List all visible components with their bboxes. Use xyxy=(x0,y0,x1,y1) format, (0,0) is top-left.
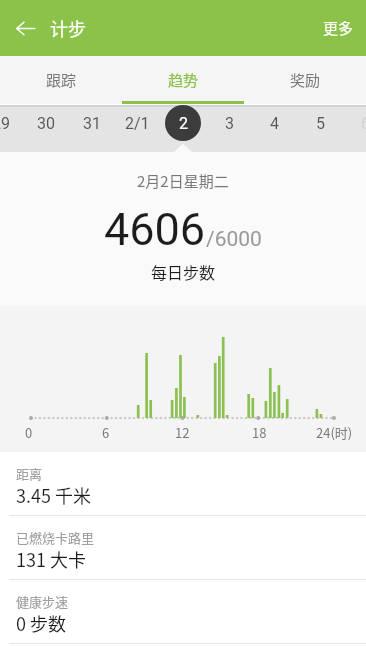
staticText: 2月2日星期二 xyxy=(137,170,229,192)
staticText: 趋势 xyxy=(168,69,199,91)
staticText: 计步 xyxy=(50,15,86,41)
button[interactable]: 健康步速 xyxy=(0,580,366,643)
staticText: 4 xyxy=(270,114,279,133)
staticText: 5 xyxy=(316,114,325,133)
button[interactable]: 跟踪 xyxy=(0,56,122,104)
staticText: 18 xyxy=(252,423,267,442)
staticText: 距离 xyxy=(16,464,43,483)
staticText: 2/1 xyxy=(125,114,150,133)
staticText: 奖励 xyxy=(290,69,321,91)
button[interactable]: 距离 xyxy=(0,452,366,515)
staticText: 已燃烧卡路里 xyxy=(16,528,95,547)
staticText: 更多 xyxy=(323,17,354,39)
button[interactable]: 2 xyxy=(160,104,206,152)
staticText: 6 xyxy=(361,114,366,133)
button[interactable]: 31 xyxy=(69,104,115,152)
button[interactable]: 5 xyxy=(297,104,343,152)
staticText: 24(时) xyxy=(316,423,353,442)
staticText: 0 步数 xyxy=(16,610,67,636)
staticText: 131 大卡 xyxy=(16,546,87,572)
staticText: 每日步数 xyxy=(151,260,216,283)
button[interactable]: 2/1 xyxy=(114,104,160,152)
staticText: 健康步速 xyxy=(16,592,69,611)
staticText: 6 xyxy=(102,423,110,442)
button[interactable]: 已燃烧卡路里 xyxy=(0,516,366,579)
button[interactable]: 29 xyxy=(0,104,24,152)
staticText: 31 xyxy=(83,114,101,133)
staticText: 0 xyxy=(25,423,33,442)
staticText: /6000 xyxy=(206,227,262,252)
button[interactable]: Back xyxy=(5,8,45,48)
button[interactable]: 奖励 xyxy=(244,56,366,104)
button[interactable]: 趋势 xyxy=(122,56,244,104)
staticText: 4606 xyxy=(104,203,206,256)
staticText: 30 xyxy=(37,114,55,133)
button[interactable]: 30 xyxy=(23,104,69,152)
staticText: 12 xyxy=(175,423,190,442)
staticText: 跟踪 xyxy=(46,69,77,91)
staticText: 29 xyxy=(0,114,10,133)
button[interactable]: 6 xyxy=(342,104,366,152)
button[interactable]: 3 xyxy=(206,104,252,152)
staticText: 3 xyxy=(225,114,234,133)
button[interactable]: 4 xyxy=(251,104,297,152)
staticText: 2 xyxy=(179,114,188,133)
staticText: 3.45 千米 xyxy=(16,482,92,508)
button[interactable]: 更多 xyxy=(311,7,366,49)
